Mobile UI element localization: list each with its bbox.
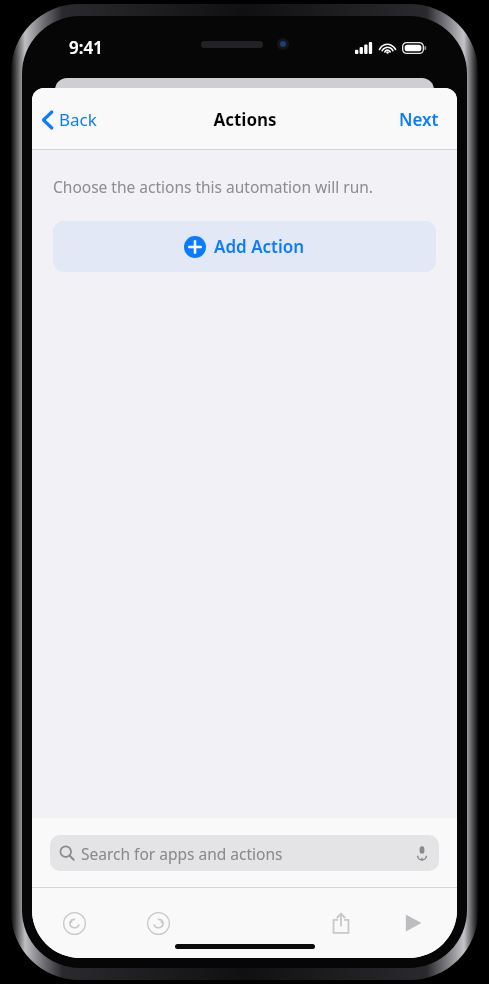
button[interactable]: Next (381, 100, 457, 139)
button[interactable]: Search for apps and actions (50, 835, 439, 871)
staticText: Add Action (214, 235, 305, 258)
staticText: Search for apps and actions (81, 843, 414, 864)
other: Dictate (414, 845, 430, 861)
button[interactable]: Back (32, 102, 107, 137)
staticText: Choose the actions this automation will … (53, 176, 373, 197)
staticText: 9:41 (69, 36, 103, 59)
button[interactable]: Share (319, 901, 363, 945)
button[interactable]: Run (391, 901, 435, 945)
button[interactable]: Add Action (53, 221, 436, 272)
staticText: Back (59, 108, 97, 131)
staticText: Next (399, 108, 439, 131)
button[interactable]: Redo (136, 901, 180, 945)
staticText: Actions (213, 108, 277, 131)
button[interactable]: Undo (52, 901, 96, 945)
